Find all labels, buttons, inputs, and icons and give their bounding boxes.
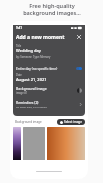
button[interactable] xyxy=(13,127,21,160)
button[interactable]: Background image xyxy=(16,86,82,95)
staticText: Reminders (2) xyxy=(16,100,39,105)
staticText: Select image xyxy=(64,120,82,124)
button[interactable]: Reminders (2) xyxy=(16,100,82,108)
staticText: Wedding day xyxy=(16,48,41,53)
staticText: 9:41 xyxy=(16,26,22,30)
staticText: Background image xyxy=(16,86,47,91)
button[interactable]: Select image xyxy=(57,119,85,125)
staticText: Title xyxy=(16,44,22,48)
staticText: Date xyxy=(16,73,22,77)
staticText: Background image xyxy=(15,120,42,124)
staticText: Free high-quality xyxy=(29,2,75,9)
button[interactable]: Background image xyxy=(13,119,44,125)
staticText: image #1 xyxy=(16,91,28,95)
button[interactable]: Entire day (no specific time) xyxy=(16,65,82,72)
staticText: August 21, 2021 xyxy=(16,77,47,82)
button[interactable]: Add a new moment xyxy=(16,33,82,41)
staticText: Add a new moment xyxy=(16,34,65,41)
staticText: by: Someone Type: Memory xyxy=(16,55,51,59)
staticText: On event date, 24 hr before xyxy=(16,105,47,108)
staticText: background images... xyxy=(23,9,81,16)
button[interactable]: Close xyxy=(76,34,82,40)
button[interactable] xyxy=(47,127,85,160)
staticText: Entire day (no specific time) xyxy=(16,67,58,71)
